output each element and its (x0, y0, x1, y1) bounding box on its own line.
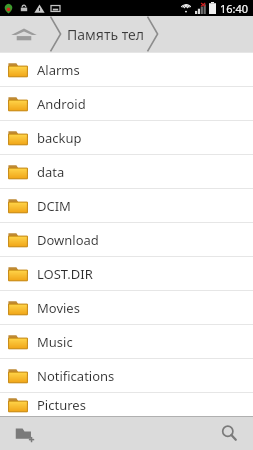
button[interactable]: Search (205, 417, 253, 450)
staticText: LOST.DIR (37, 265, 93, 283)
button[interactable]: Download (0, 223, 253, 256)
staticText: data (37, 163, 65, 181)
button[interactable]: Music (0, 325, 253, 358)
button[interactable]: Pictures (0, 393, 253, 416)
button[interactable]: data (0, 155, 253, 188)
button[interactable]: New folder (0, 417, 48, 450)
staticText: Alarms (37, 61, 80, 79)
staticText: Music (37, 333, 73, 351)
staticText: Notifications (37, 367, 115, 385)
staticText: Download (37, 231, 99, 249)
staticText: 16:40 (220, 1, 249, 16)
button[interactable]: DCIM (0, 189, 253, 222)
button[interactable]: Память тел (67, 25, 144, 44)
button[interactable]: Home (0, 16, 48, 52)
button[interactable]: backup (0, 121, 253, 154)
staticText: Pictures (37, 396, 86, 414)
button[interactable]: Alarms (0, 53, 253, 86)
button[interactable]: Android (0, 87, 253, 120)
button[interactable]: Notifications (0, 359, 253, 392)
staticText: backup (37, 129, 82, 147)
staticText: Память тел (67, 25, 144, 44)
staticText: Movies (37, 299, 80, 317)
button[interactable]: Movies (0, 291, 253, 324)
button[interactable]: LOST.DIR (0, 257, 253, 290)
staticText: DCIM (37, 197, 71, 215)
staticText: Android (37, 95, 86, 113)
